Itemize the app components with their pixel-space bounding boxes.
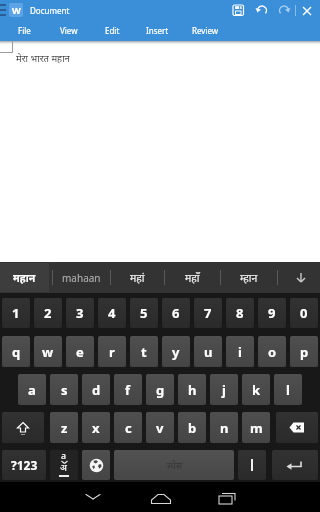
button[interactable] — [78, 482, 108, 512]
button[interactable]: v — [146, 412, 174, 443]
button[interactable]: t — [130, 336, 158, 367]
button[interactable]: 6 — [162, 298, 190, 328]
staticText: p — [300, 343, 309, 361]
button[interactable]: g — [146, 374, 174, 405]
staticText: z — [61, 419, 68, 437]
staticText: l — [286, 381, 290, 399]
button[interactable]: 1 — [2, 298, 30, 328]
button[interactable]: o — [258, 336, 286, 367]
button[interactable] — [254, 2, 270, 18]
staticText: g — [156, 381, 165, 399]
staticText: o — [268, 343, 277, 361]
staticText: महान — [13, 271, 36, 285]
staticText: अ — [60, 461, 67, 473]
button[interactable]: d — [82, 374, 110, 405]
button[interactable]: i — [226, 336, 254, 367]
button[interactable]: m — [242, 412, 270, 443]
button[interactable]: l — [274, 374, 302, 405]
staticText: 8 — [236, 304, 244, 322]
button[interactable] — [272, 450, 318, 480]
button[interactable]: h — [178, 374, 206, 405]
button[interactable]: 5 — [130, 298, 158, 328]
staticText: 4 — [108, 304, 116, 322]
staticText: e — [76, 343, 84, 361]
button[interactable] — [82, 450, 110, 480]
button[interactable]: s — [50, 374, 78, 405]
button[interactable]: 7 — [194, 298, 222, 328]
button[interactable]: 0 — [290, 298, 318, 328]
button[interactable]: 3 — [66, 298, 94, 328]
staticText: w — [42, 343, 54, 361]
staticText: 9 — [268, 304, 276, 322]
staticText: n — [220, 419, 229, 437]
staticText: 5 — [140, 304, 148, 322]
button[interactable]: महाँ — [168, 263, 216, 292]
button[interactable]: r — [98, 336, 126, 367]
staticText: mahaan — [62, 271, 101, 285]
button[interactable] — [276, 412, 318, 443]
staticText: f — [125, 381, 131, 399]
staticText: म्हान — [240, 271, 258, 285]
button[interactable]: स्पेस — [114, 450, 234, 480]
staticText: t — [141, 343, 147, 361]
button[interactable] — [299, 2, 315, 18]
staticText: s — [61, 381, 68, 399]
button[interactable]: j — [210, 374, 238, 405]
button[interactable] — [230, 2, 246, 18]
button[interactable]: f — [114, 374, 142, 405]
staticText: 2 — [44, 304, 52, 322]
button[interactable]: mahaan — [56, 263, 106, 292]
button[interactable]: k — [242, 374, 270, 405]
button[interactable]: ?123 — [2, 450, 46, 480]
button[interactable]: a — [50, 450, 78, 480]
button[interactable]: q — [2, 336, 30, 367]
staticText: c — [125, 419, 132, 437]
button[interactable]: 9 — [258, 298, 286, 328]
staticText: महाँ — [185, 271, 200, 285]
button[interactable] — [212, 482, 242, 512]
staticText: a — [61, 450, 67, 461]
button[interactable]: b — [178, 412, 206, 443]
button[interactable] — [238, 450, 266, 480]
button[interactable]: y — [162, 336, 190, 367]
staticText: महां — [130, 271, 145, 285]
staticText: 6 — [172, 304, 180, 322]
button[interactable]: Insert — [142, 22, 165, 39]
staticText: m — [250, 419, 263, 437]
button[interactable]: c — [114, 412, 142, 443]
staticText: स्पेस — [167, 459, 182, 471]
button[interactable]: u — [194, 336, 222, 367]
button[interactable]: Edit — [101, 22, 116, 39]
staticText: k — [252, 381, 261, 399]
staticText: h — [188, 381, 197, 399]
button[interactable]: z — [50, 412, 78, 443]
staticText: d — [92, 381, 101, 399]
button[interactable] — [146, 482, 176, 512]
button[interactable]: महान — [0, 263, 49, 292]
staticText: Insert — [146, 25, 169, 36]
staticText: b — [188, 419, 197, 437]
button[interactable] — [276, 2, 292, 18]
staticText: Review — [192, 25, 219, 36]
button[interactable]: W — [9, 3, 23, 17]
staticText: View — [60, 25, 78, 36]
button[interactable]: 4 — [98, 298, 126, 328]
staticText: File — [18, 25, 31, 36]
button[interactable]: a — [18, 374, 46, 405]
button[interactable]: File — [14, 22, 27, 39]
button[interactable]: View — [56, 22, 74, 39]
button[interactable]: 2 — [34, 298, 62, 328]
button[interactable]: महां — [114, 263, 160, 292]
button[interactable]: e — [66, 336, 94, 367]
button[interactable]: p — [290, 336, 318, 367]
button[interactable]: x — [82, 412, 110, 443]
button[interactable]: w — [34, 336, 62, 367]
staticText: मेरा भारत महान — [16, 52, 70, 65]
button[interactable]: Review — [188, 22, 215, 39]
button[interactable]: म्हान — [224, 263, 273, 292]
button[interactable] — [281, 263, 320, 292]
button[interactable]: n — [210, 412, 238, 443]
button[interactable]: 8 — [226, 298, 254, 328]
staticText: Edit — [105, 25, 120, 36]
button[interactable] — [2, 412, 44, 443]
